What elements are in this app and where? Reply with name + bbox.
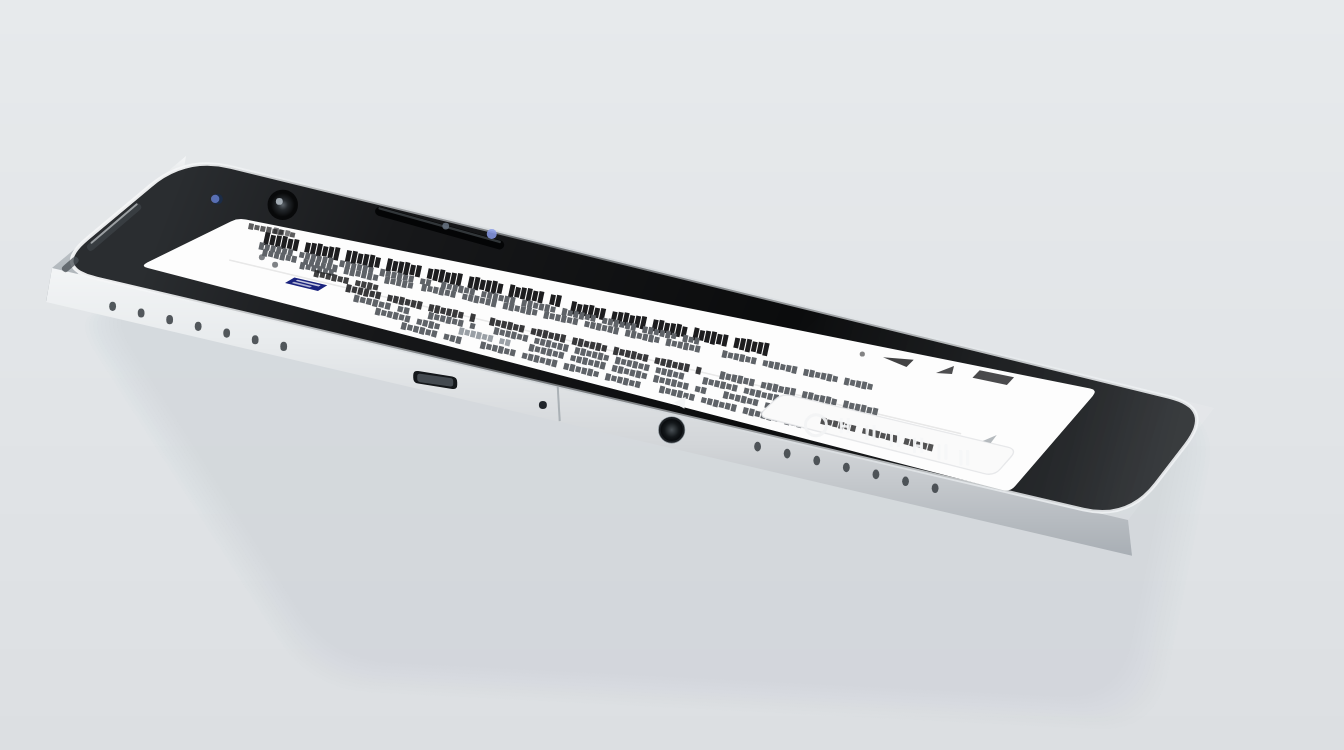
button[interactable]: Huawei phone showing a search results pa…	[0, 0, 1344, 750]
